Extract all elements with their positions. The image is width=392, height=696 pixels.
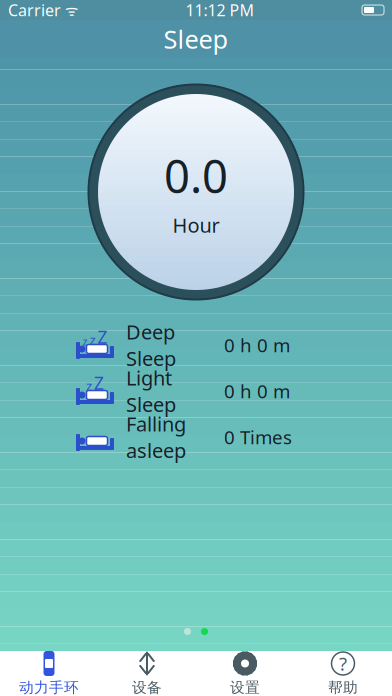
- staticText: z: [89, 331, 95, 348]
- staticText: 帮助: [328, 678, 358, 696]
- button[interactable]: 帮助: [294, 651, 392, 696]
- staticText: 动力手环: [19, 678, 79, 696]
- staticText: z: [82, 334, 87, 348]
- staticText: 0 Times: [224, 425, 292, 449]
- staticText: ?: [339, 651, 347, 676]
- staticText: z: [86, 377, 92, 394]
- button[interactable]: Falling asleep: [0, 414, 392, 460]
- staticText: ᯤ: [61, 0, 78, 20]
- staticText: Z: [94, 371, 104, 394]
- button[interactable]: 设置: [196, 651, 294, 696]
- staticText: Sleep: [163, 22, 228, 56]
- staticText: 11:12 PM: [185, 0, 254, 21]
- button[interactable]: z: [0, 322, 392, 368]
- staticText: Deep Sleep: [126, 318, 176, 371]
- staticText: 设备: [132, 678, 162, 696]
- staticText: Falling asleep: [126, 410, 186, 463]
- button[interactable]: 动力手环: [0, 651, 98, 696]
- staticText: Light Sleep: [126, 364, 176, 417]
- staticText: Hour: [172, 212, 219, 238]
- button[interactable]: 设备: [98, 651, 196, 696]
- staticText: 0.0: [164, 146, 228, 206]
- button[interactable]: z: [0, 368, 392, 414]
- staticText: 0 h 0 m: [224, 333, 290, 357]
- staticText: Carrier: [8, 0, 61, 21]
- staticText: 设置: [230, 678, 260, 696]
- staticText: Z: [97, 325, 107, 348]
- staticText: 0 h 0 m: [224, 379, 290, 403]
